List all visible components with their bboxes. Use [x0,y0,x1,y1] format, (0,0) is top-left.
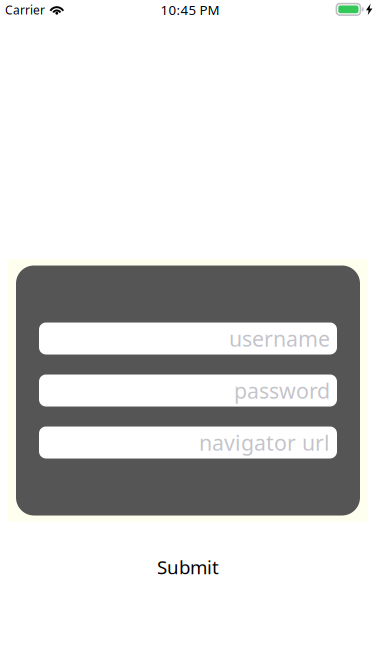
staticText: navigator url [199,428,330,457]
textField[interactable]: username [39,322,337,354]
button[interactable]: username [39,322,337,354]
staticText: Carrier [5,2,45,18]
staticText: username [229,324,330,353]
staticText: 10:45 PM [160,1,219,19]
staticText: password [234,376,330,405]
textField[interactable]: navigator url [39,426,337,458]
button[interactable]: Submit [128,547,248,587]
textField[interactable]: password [39,374,337,406]
button[interactable]: navigator url [39,426,337,458]
button[interactable]: password [39,374,337,406]
staticText: Submit [157,555,219,579]
